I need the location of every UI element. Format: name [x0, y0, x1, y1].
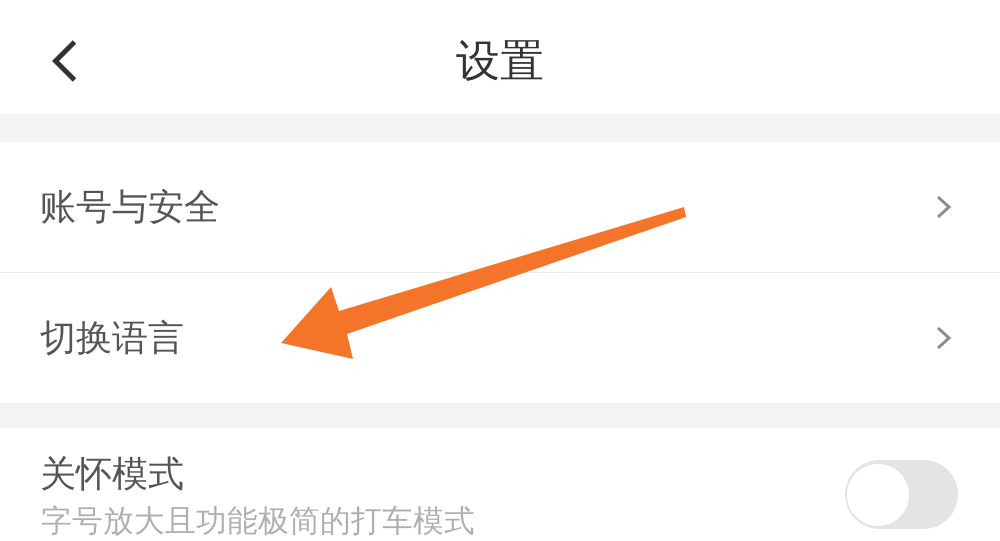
staticText: 关怀模式: [40, 452, 184, 496]
staticText: 切换语言: [40, 316, 184, 360]
button[interactable]: 关怀模式: [845, 460, 958, 529]
staticText: 字号放大且功能极简的打车模式: [41, 502, 475, 540]
button[interactable]: 切换语言: [0, 273, 1000, 403]
staticText: 设置: [456, 34, 544, 88]
button[interactable]: Back: [0, 0, 110, 114]
button[interactable]: 账号与安全: [0, 142, 1000, 272]
staticText: 账号与安全: [40, 185, 220, 229]
